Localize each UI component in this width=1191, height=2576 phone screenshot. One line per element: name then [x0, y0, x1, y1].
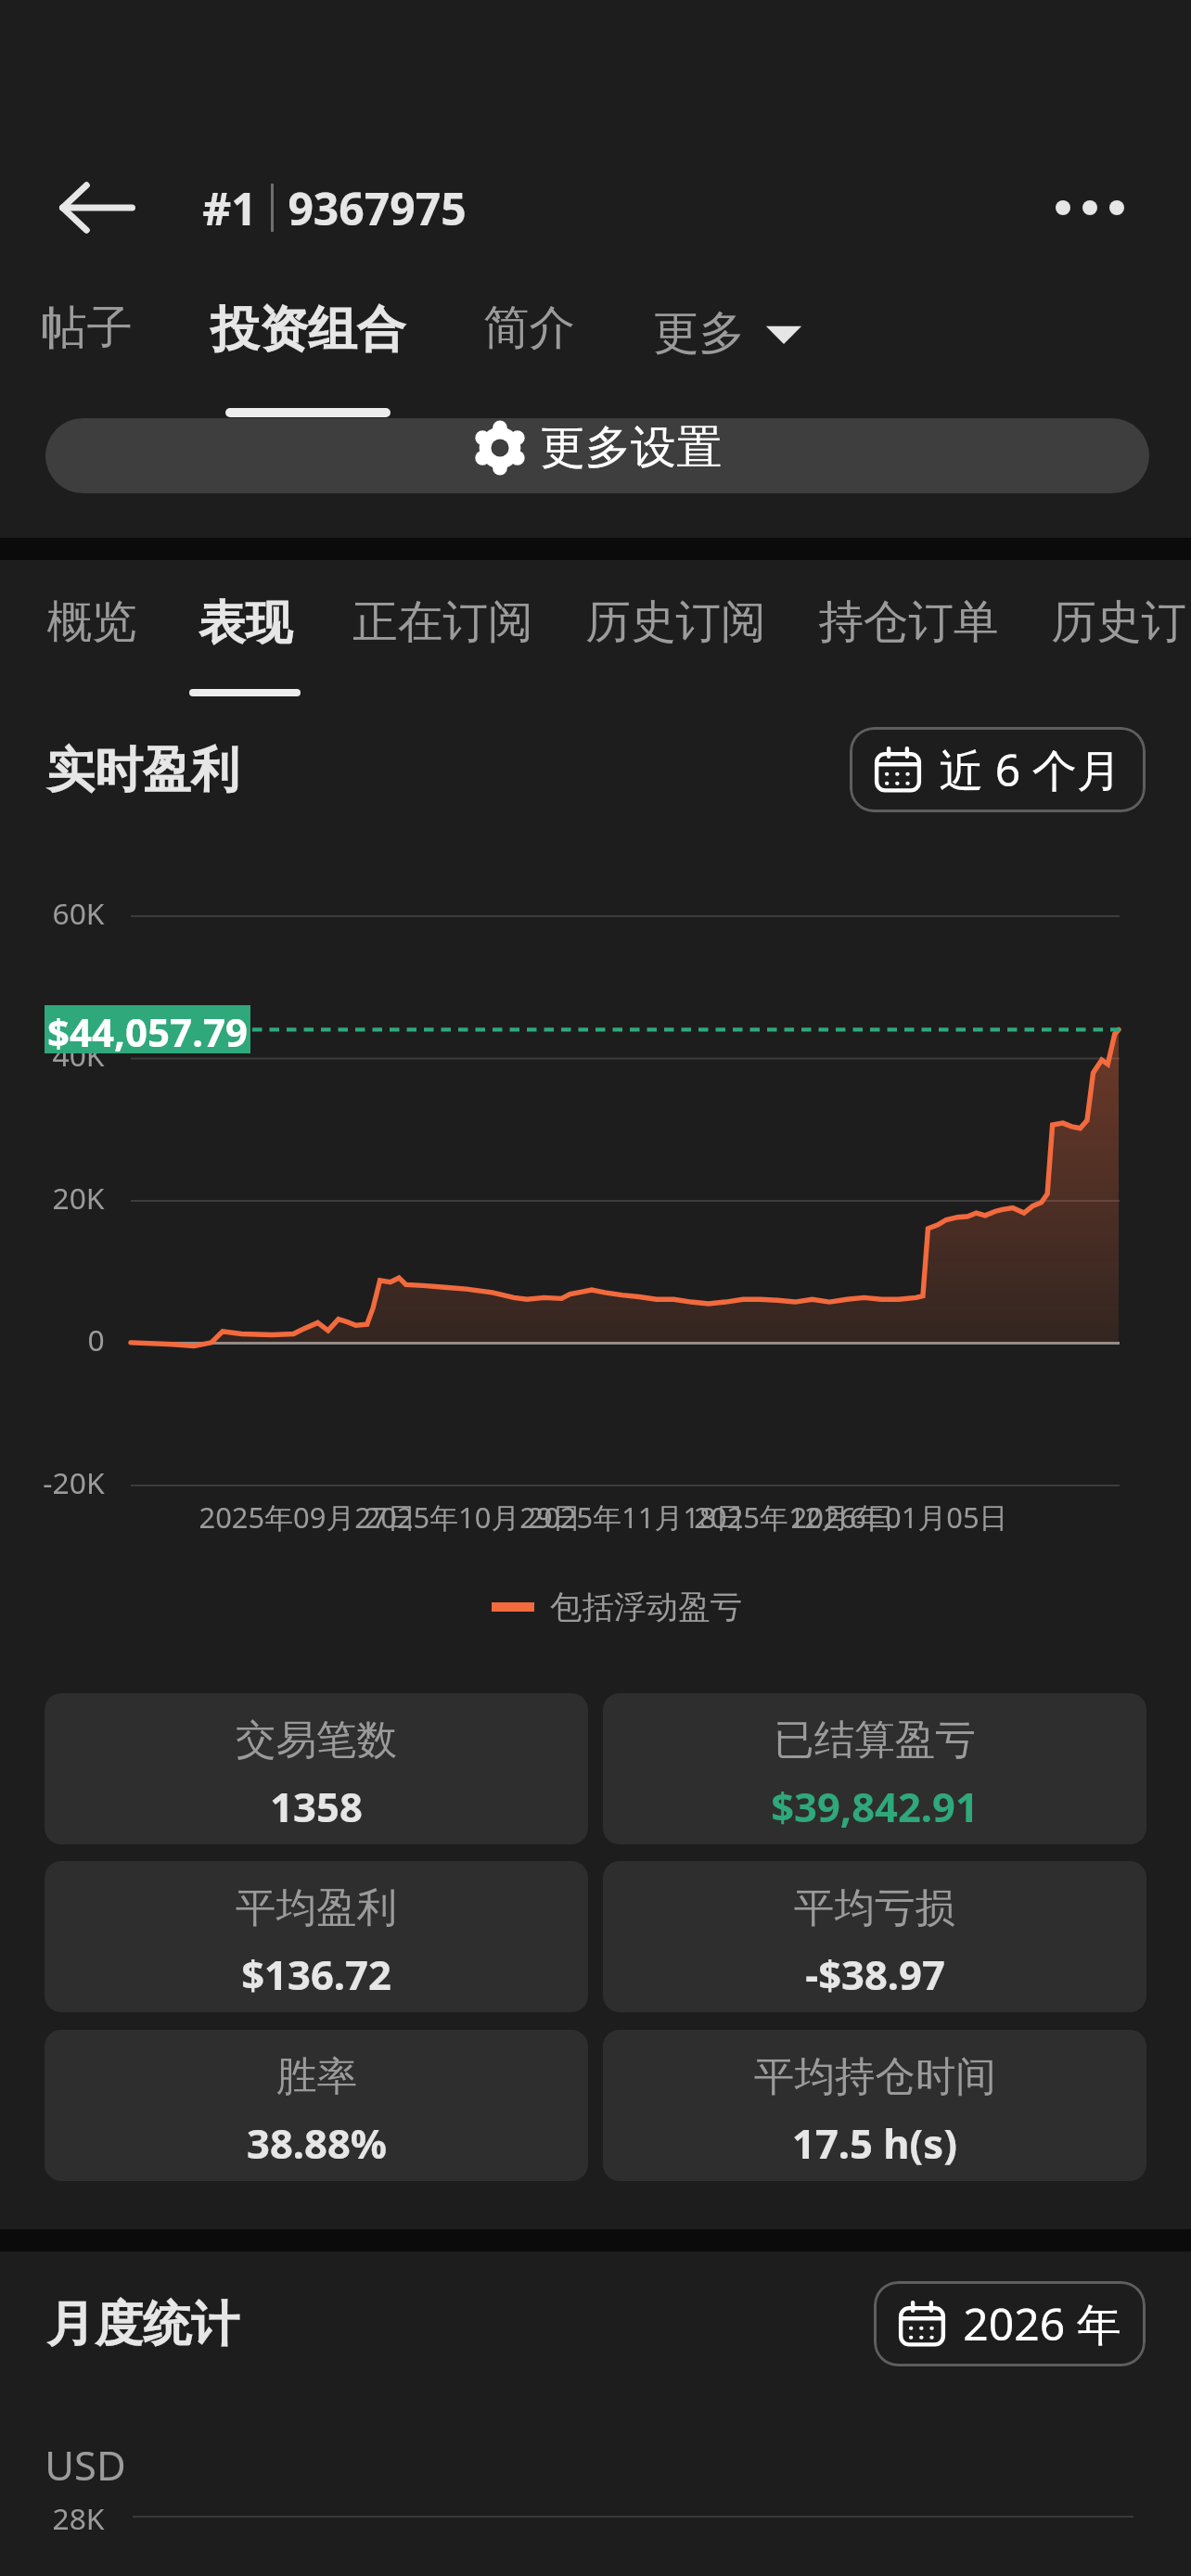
- staticText: 简介: [483, 299, 575, 356]
- button[interactable]: Back: [53, 163, 142, 252]
- staticText: 60K: [52, 893, 105, 932]
- staticText: 40K: [52, 1035, 105, 1074]
- staticText: 近 6 个月: [939, 739, 1121, 800]
- staticText: 平均盈利: [236, 1882, 397, 1933]
- staticText: 月度统计: [46, 2294, 239, 2354]
- button[interactable]: 简介: [444, 299, 614, 356]
- button[interactable]: More options: [1045, 163, 1134, 252]
- button[interactable]: 平均持仓时间: [603, 2030, 1146, 2181]
- staticText: 38.88%: [247, 2115, 387, 2170]
- staticText: 交易笔数: [236, 1715, 397, 1766]
- staticText: 更多: [653, 304, 745, 362]
- staticText: $44,057.79: [47, 1005, 248, 1053]
- staticText: 2025年10月29日: [364, 1498, 582, 1537]
- staticText: #1: [202, 178, 257, 238]
- staticText: 0: [87, 1320, 105, 1358]
- staticText: 28K: [52, 2498, 105, 2535]
- button[interactable]: 平均亏损: [603, 1861, 1146, 2012]
- staticText: -$38.97: [805, 1946, 945, 2001]
- staticText: 2026年01月05日: [790, 1498, 1008, 1537]
- staticText: 1358: [270, 1779, 363, 1833]
- staticText: 已结算盈亏: [774, 1715, 976, 1766]
- button[interactable]: 已结算盈亏: [603, 1693, 1146, 1844]
- staticText: 2025年12月6日: [694, 1498, 895, 1537]
- staticText: 历史订单: [1051, 593, 1185, 650]
- staticText: 概览: [46, 593, 137, 650]
- button[interactable]: 更多: [614, 304, 841, 362]
- staticText: 17.5 h(s): [792, 2115, 957, 2170]
- staticText: $39,842.91: [771, 1779, 979, 1833]
- staticText: 包括浮动盈亏: [550, 1588, 742, 1627]
- staticText: 实时盈利: [46, 740, 239, 800]
- button[interactable]: 交易笔数: [45, 1693, 588, 1844]
- staticText: 胜率: [276, 2051, 357, 2102]
- staticText: 帖子: [41, 299, 133, 356]
- staticText: 表现: [198, 593, 292, 652]
- staticText: 更多设置: [540, 419, 722, 477]
- staticText: -20K: [43, 1462, 105, 1501]
- button[interactable]: 帖子: [2, 299, 172, 356]
- button[interactable]: 持仓订单: [792, 593, 1025, 650]
- staticText: $136.72: [241, 1946, 391, 2001]
- staticText: 正在订阅: [352, 593, 533, 650]
- staticText: 9367975: [288, 178, 467, 238]
- button[interactable]: 更多设置: [45, 418, 1149, 493]
- staticText: 持仓订单: [818, 593, 999, 650]
- staticText: USD: [45, 2437, 126, 2492]
- staticText: 20K: [52, 1178, 105, 1217]
- button[interactable]: 概览: [20, 593, 163, 650]
- staticText: 2025年09月27日: [198, 1498, 416, 1537]
- staticText: 平均亏损: [794, 1882, 955, 1933]
- button[interactable]: 胜率: [45, 2030, 588, 2181]
- staticText: 2025年11月18日: [527, 1498, 745, 1537]
- button[interactable]: 历史订阅: [559, 593, 792, 650]
- staticText: 2026 年: [963, 2293, 1121, 2354]
- staticText: 投资组合: [211, 299, 405, 360]
- button[interactable]: 历史订单: [1025, 593, 1191, 650]
- staticText: 历史订阅: [585, 593, 766, 650]
- button[interactable]: 2026 年: [874, 2281, 1146, 2366]
- button[interactable]: 近 6 个月: [850, 727, 1146, 812]
- button[interactable]: 表现: [163, 593, 327, 696]
- button[interactable]: 正在订阅: [327, 593, 559, 650]
- button[interactable]: 平均盈利: [45, 1861, 588, 2012]
- staticText: 平均持仓时间: [754, 2051, 996, 2102]
- button[interactable]: 投资组合: [172, 299, 444, 417]
